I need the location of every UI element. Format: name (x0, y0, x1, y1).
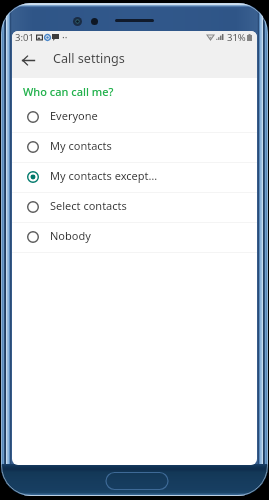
staticText: Everyone (50, 108, 98, 123)
staticText: Select contacts (50, 198, 127, 213)
button[interactable]: Select contacts (12, 193, 257, 223)
staticText: My contacts (50, 138, 112, 153)
button[interactable]: My contacts (12, 133, 257, 163)
button[interactable]: My contacts except… (12, 163, 257, 193)
staticText: Nobody (50, 228, 91, 243)
staticText: ·· (62, 31, 68, 44)
button[interactable]: Back (12, 44, 45, 77)
button[interactable]: Nobody (12, 223, 257, 253)
button[interactable]: Everyone (12, 103, 257, 133)
staticText: My contacts except… (50, 168, 158, 183)
staticText: 31% (227, 31, 246, 44)
staticText: Call settings (53, 50, 125, 67)
staticText: Who can call me? (23, 84, 114, 99)
button[interactable]: Home (105, 471, 169, 491)
staticText: 3:01 (15, 31, 34, 44)
